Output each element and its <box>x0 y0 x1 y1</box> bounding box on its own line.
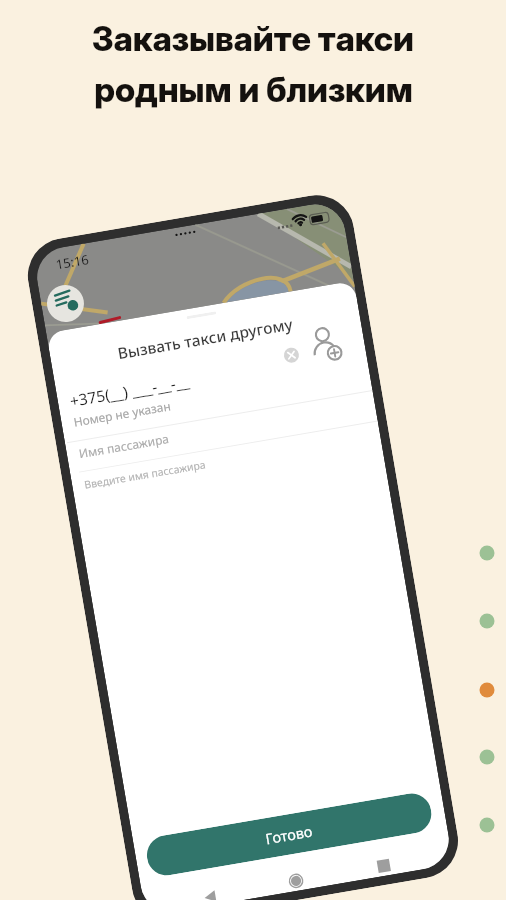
staticText: Заказывайте такси <box>92 18 414 59</box>
staticText: родным и близким <box>94 69 413 110</box>
staticText: 15:16 <box>54 250 91 273</box>
staticText: Введите имя пассажира <box>83 457 207 492</box>
other: Menu <box>32 200 453 900</box>
staticText: Вызвать такси другому <box>116 313 295 363</box>
staticText: Номер не указан <box>72 397 172 430</box>
staticText: +375(__) ___-__-__ <box>68 370 191 411</box>
button[interactable]: Готово <box>144 790 434 878</box>
staticText: Готово <box>264 820 314 848</box>
staticText: Имя пассажира <box>78 430 170 461</box>
